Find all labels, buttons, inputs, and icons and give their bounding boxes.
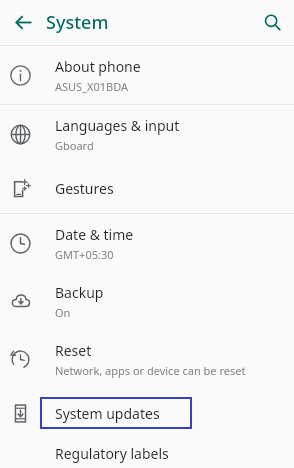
- button[interactable]: Gestures: [0, 163, 294, 213]
- button[interactable]: Backup: [0, 272, 294, 330]
- button[interactable]: Back: [0, 0, 46, 45]
- staticText: Date & time: [55, 225, 134, 244]
- staticText: Network, apps or device can be reset: [55, 363, 246, 378]
- staticText: System updates: [55, 404, 160, 423]
- button[interactable]: Languages & input: [0, 105, 294, 163]
- staticText: Gboard: [55, 138, 94, 153]
- button[interactable]: Regulatory labels: [0, 438, 294, 468]
- staticText: System: [46, 10, 109, 35]
- staticText: Backup: [55, 283, 104, 302]
- button[interactable]: About phone: [0, 46, 294, 104]
- button[interactable]: Date & time: [0, 214, 294, 272]
- staticText: Languages & input: [55, 116, 180, 135]
- button[interactable]: Reset: [0, 330, 294, 388]
- staticText: GMT+05:30: [55, 247, 114, 262]
- staticText: Gestures: [55, 179, 114, 198]
- staticText: Regulatory labels: [55, 444, 169, 463]
- staticText: ASUS_X01BDA: [55, 79, 129, 94]
- button[interactable]: Search: [250, 0, 294, 45]
- staticText: About phone: [55, 57, 141, 76]
- button[interactable]: System updates: [0, 388, 294, 438]
- staticText: On: [55, 305, 71, 320]
- staticText: Reset: [55, 341, 92, 360]
